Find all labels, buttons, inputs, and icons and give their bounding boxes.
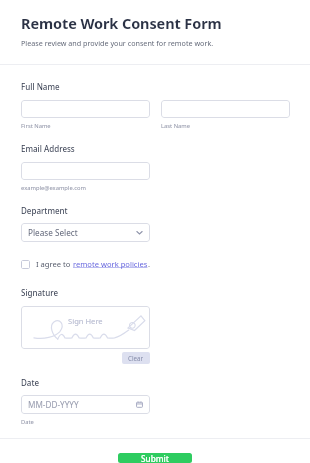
button[interactable]: Clear bbox=[122, 352, 150, 364]
staticText: I agree to bbox=[36, 259, 73, 269]
staticText: Submit bbox=[141, 453, 169, 463]
staticText: example@example.com bbox=[21, 184, 86, 192]
staticText: remote work policies bbox=[73, 259, 148, 269]
staticText: . bbox=[148, 259, 151, 269]
button[interactable]: MM-DD-YYYY bbox=[21, 395, 150, 414]
staticText: Please review and provide your consent f… bbox=[21, 38, 214, 48]
staticText: First Name bbox=[21, 122, 51, 130]
button[interactable] bbox=[161, 100, 290, 118]
staticText: Date bbox=[21, 418, 34, 426]
staticText: Email Address bbox=[21, 143, 75, 154]
staticText: Last Name bbox=[161, 122, 191, 130]
button[interactable] bbox=[21, 162, 150, 180]
staticText: Department bbox=[21, 205, 68, 216]
staticText: Clear bbox=[128, 354, 144, 362]
button[interactable] bbox=[21, 100, 150, 118]
staticText: Signature bbox=[21, 287, 59, 298]
staticText: Date bbox=[21, 377, 40, 388]
staticText: Full Name bbox=[21, 81, 60, 92]
button[interactable]: I agree to bbox=[21, 259, 155, 269]
button[interactable]: Please Select bbox=[21, 223, 150, 242]
button[interactable]: Signature pad bbox=[21, 306, 150, 349]
other: Pick date bbox=[136, 401, 143, 408]
button[interactable]: Submit bbox=[118, 453, 192, 463]
staticText: Remote Work Consent Form bbox=[21, 13, 222, 33]
staticText: Sign Here bbox=[68, 316, 103, 326]
staticText: MM-DD-YYYY bbox=[28, 399, 79, 410]
staticText: Please Select bbox=[28, 227, 78, 238]
